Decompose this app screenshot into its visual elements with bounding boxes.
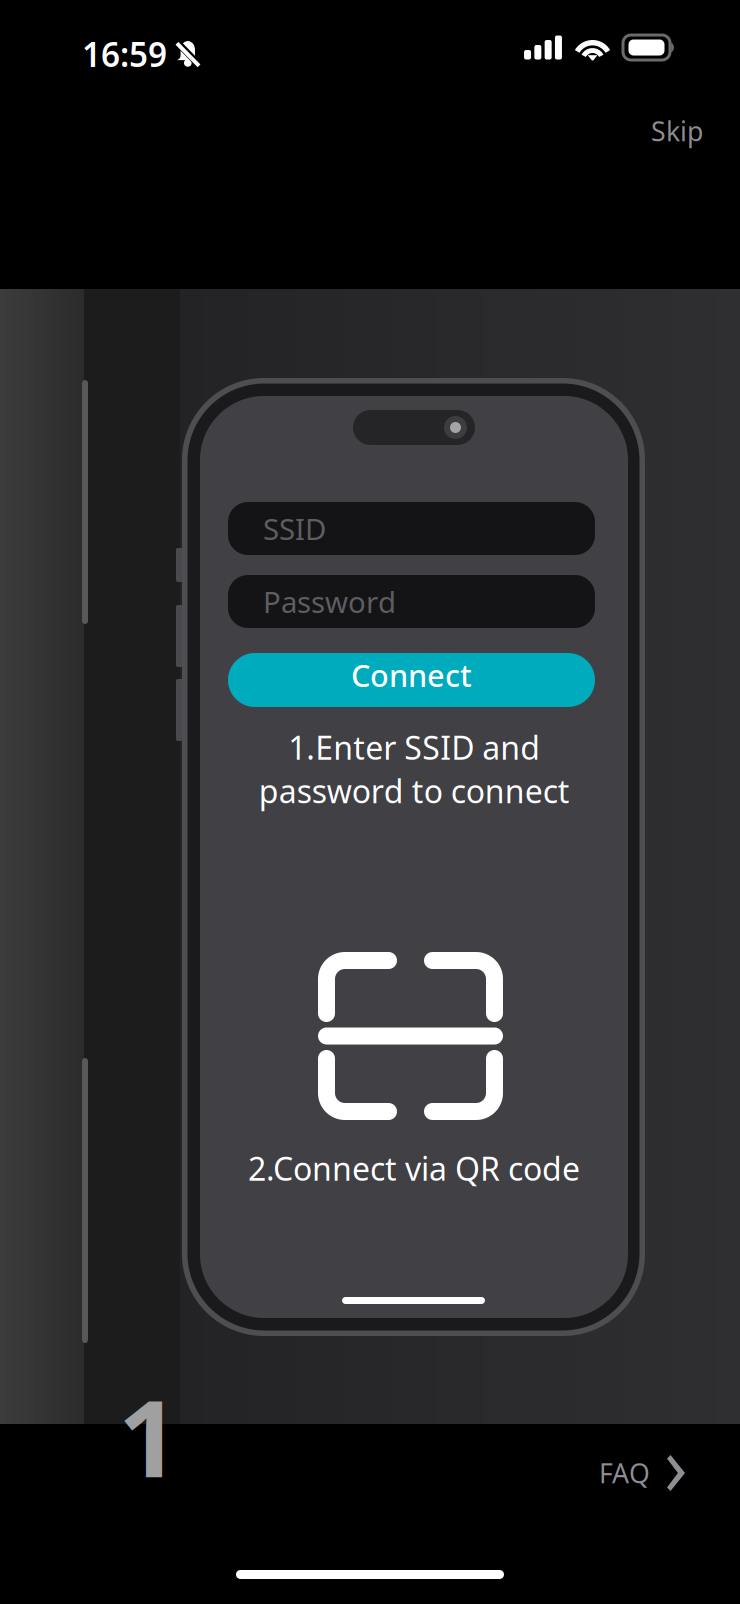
staticText: Connect: [351, 655, 472, 695]
staticText: 1: [118, 1365, 179, 1507]
staticText: 16:59: [82, 32, 167, 76]
staticText: 1.Enter SSID and password to connect: [258, 726, 569, 812]
button[interactable]: FAQ: [585, 1438, 699, 1508]
staticText: Password: [263, 582, 396, 621]
staticText: SSID: [263, 509, 326, 548]
staticText: Skip: [651, 113, 703, 149]
button[interactable]: Skip: [629, 101, 725, 161]
staticText: 2.Connect via QR code: [248, 1147, 580, 1189]
staticText: FAQ: [599, 1455, 650, 1491]
button[interactable]: Connect: [228, 653, 595, 707]
